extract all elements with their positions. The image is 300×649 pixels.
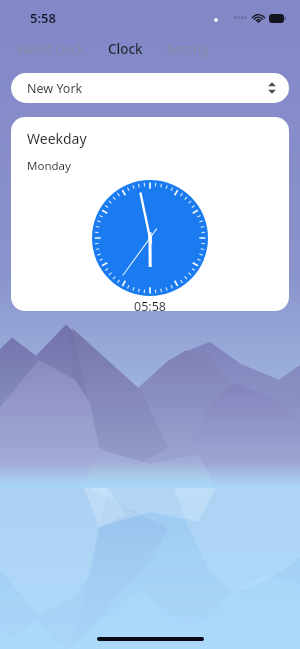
staticText: World clock [17,41,85,58]
button[interactable]: Weekday [11,117,289,311]
other: Change city [267,79,277,97]
button[interactable]: New York [11,73,289,103]
staticText: Setting [167,41,209,58]
staticText: 05:58 [27,298,273,311]
staticText: 5:58 [30,9,56,27]
button[interactable]: World clock [16,37,86,62]
staticText: Monday [27,158,71,174]
button[interactable]: Clock [107,36,144,62]
staticText: New York [27,80,267,97]
button[interactable]: Setting [166,37,210,62]
staticText: Weekday [27,129,87,148]
staticText: Clock [108,40,143,58]
